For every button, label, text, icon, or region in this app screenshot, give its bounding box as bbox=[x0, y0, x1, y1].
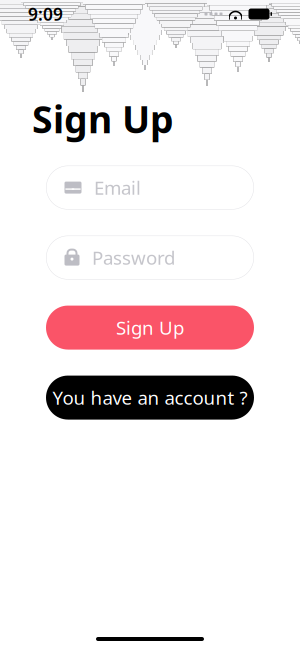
staticText: 9:09 bbox=[28, 2, 63, 25]
button[interactable]: Email bbox=[46, 166, 254, 210]
staticText: You have an account ? bbox=[52, 385, 247, 410]
staticText: Sign Up bbox=[32, 94, 174, 144]
staticText: Sign Up bbox=[116, 315, 184, 340]
button[interactable]: Password bbox=[46, 236, 254, 280]
staticText: Email bbox=[94, 175, 141, 200]
staticText: Password bbox=[92, 245, 175, 270]
button[interactable]: Sign Up bbox=[46, 306, 254, 350]
button[interactable]: You have an account ? bbox=[46, 376, 254, 420]
